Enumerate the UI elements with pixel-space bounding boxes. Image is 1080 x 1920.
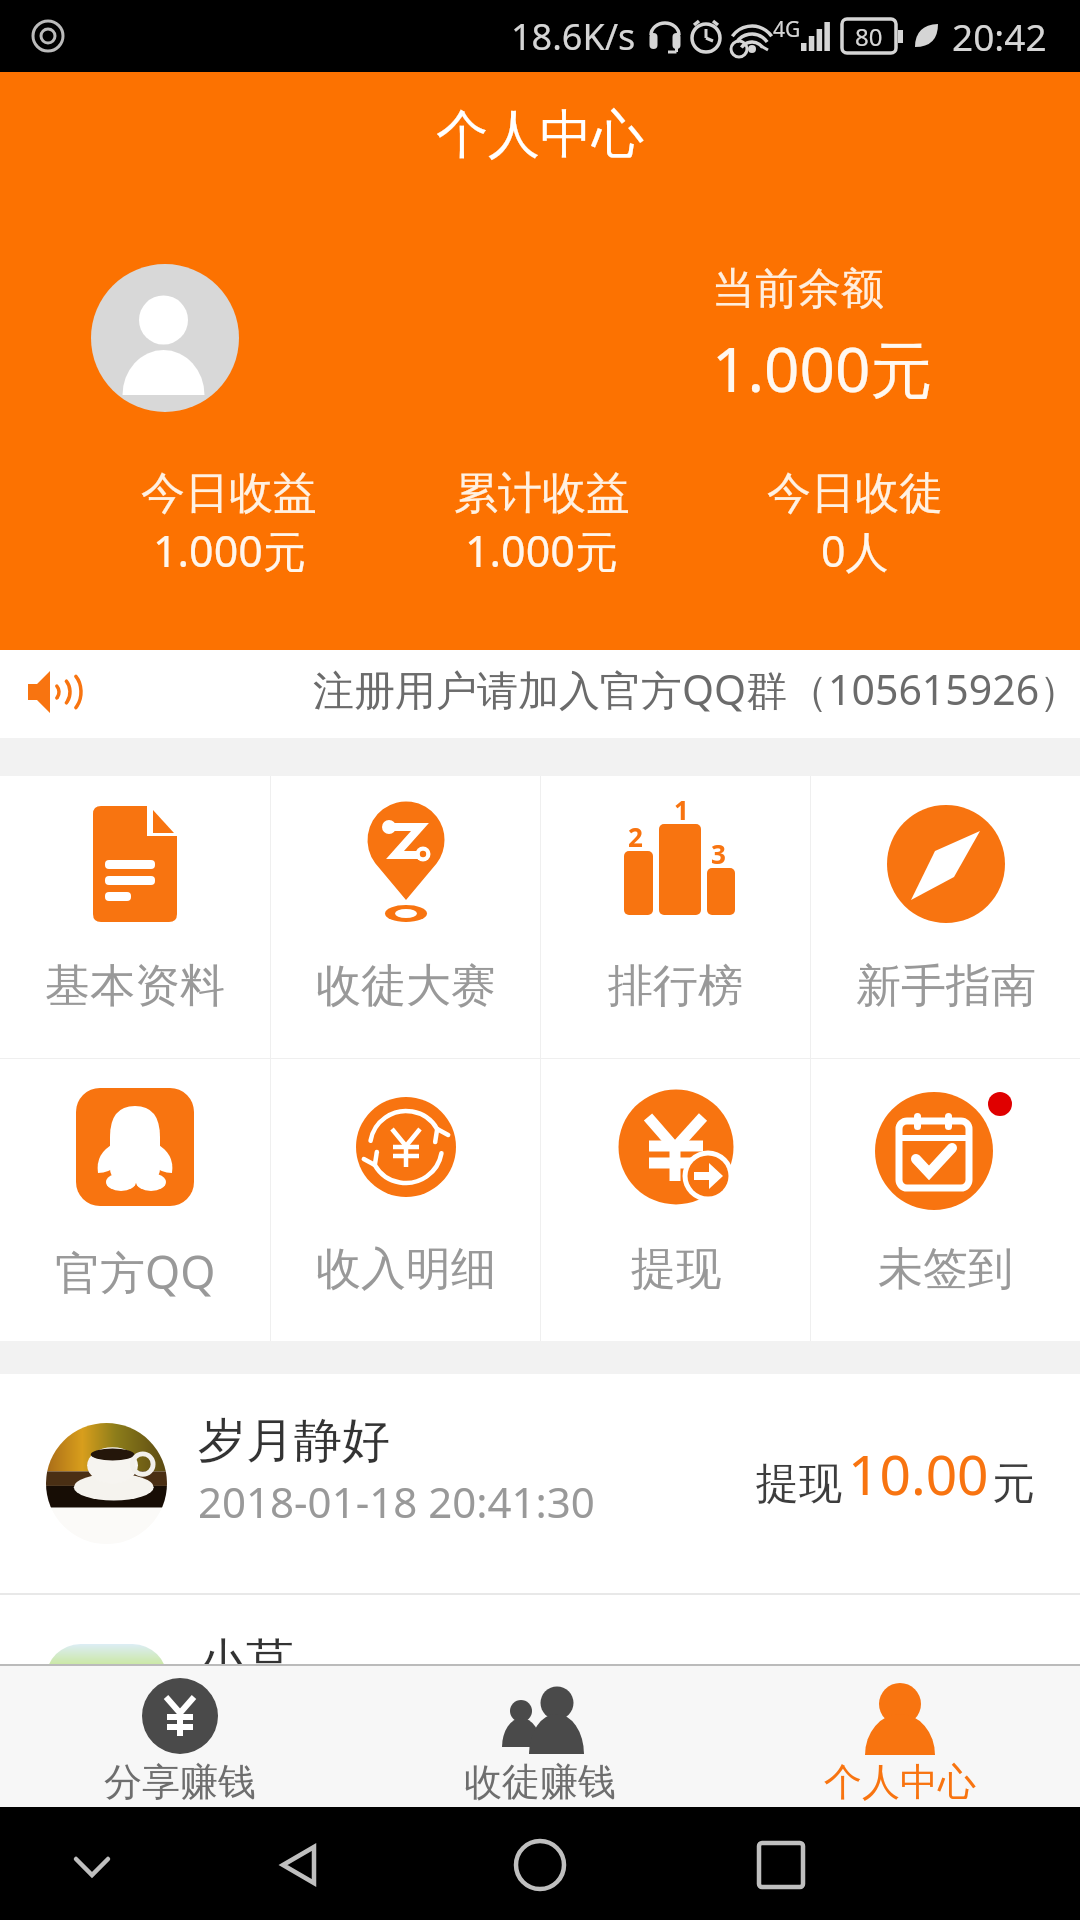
staticText: 10.00 bbox=[848, 1436, 989, 1511]
staticText: 1.000元 bbox=[153, 521, 306, 580]
button[interactable]: 未签到 bbox=[811, 1059, 1080, 1341]
staticText: 个人中心 bbox=[436, 102, 644, 168]
staticText: 1.000元 bbox=[465, 521, 618, 580]
button[interactable]: Hide keyboard bbox=[52, 1825, 132, 1905]
staticText: 4G bbox=[773, 15, 801, 44]
button[interactable]: Announcement bbox=[0, 650, 1080, 738]
button[interactable]: 小莒 bbox=[0, 1595, 1080, 1664]
button[interactable]: 基本资料 bbox=[0, 776, 270, 1058]
button[interactable]: 个人中心 bbox=[720, 1666, 1080, 1807]
staticText: 分享赚钱 bbox=[104, 1758, 256, 1806]
staticText: 小莒 bbox=[198, 1632, 294, 1664]
button[interactable]: 岁月静好 bbox=[0, 1374, 1080, 1593]
button[interactable]: 提现 bbox=[541, 1059, 810, 1341]
staticText: 注册用户请加入官方QQ群（105615926）， bbox=[313, 661, 1080, 717]
button[interactable]: Recents bbox=[741, 1825, 821, 1905]
staticText: 收徒大赛 bbox=[316, 958, 496, 1015]
staticText: 排行榜 bbox=[608, 958, 743, 1015]
staticText: 元 bbox=[992, 1457, 1035, 1511]
button[interactable]: 累计收益 bbox=[385, 466, 698, 580]
staticText: 新手指南 bbox=[856, 958, 1036, 1015]
staticText: 收入明细 bbox=[316, 1241, 496, 1298]
staticText: 18.6K/s bbox=[511, 12, 636, 61]
staticText: 收徒赚钱 bbox=[464, 1758, 616, 1806]
staticText: 基本资料 bbox=[45, 958, 225, 1015]
staticText: 个人中心 bbox=[824, 1758, 976, 1806]
button[interactable]: Profile avatar bbox=[91, 264, 239, 412]
staticText: 2018-01-18 20:41:30 bbox=[198, 1473, 595, 1530]
staticText: 提现 bbox=[756, 1457, 842, 1511]
staticText: 0人 bbox=[821, 521, 889, 580]
staticText: 80 bbox=[855, 20, 883, 53]
staticText: 官方QQ bbox=[55, 1241, 216, 1302]
button[interactable]: Back bbox=[260, 1825, 340, 1905]
staticText: 岁月静好 bbox=[198, 1411, 390, 1471]
button[interactable]: 分享赚钱 bbox=[0, 1666, 360, 1807]
staticText: 1 bbox=[674, 792, 689, 827]
staticText: 20:42 bbox=[952, 11, 1047, 61]
button[interactable]: 收徒大赛 bbox=[271, 776, 540, 1058]
staticText: 1.000元 bbox=[712, 326, 933, 411]
staticText: 当前余额 bbox=[712, 262, 884, 316]
staticText: 提现 bbox=[631, 1241, 721, 1298]
button[interactable]: 收徒赚钱 bbox=[360, 1666, 720, 1807]
staticText: 今日收益 bbox=[141, 466, 317, 521]
button[interactable]: 今日收徒 bbox=[698, 466, 1011, 580]
button[interactable]: 收入明细 bbox=[271, 1059, 540, 1341]
staticText: 累计收益 bbox=[454, 466, 630, 521]
button[interactable]: 2 bbox=[541, 776, 810, 1058]
staticText: 未签到 bbox=[878, 1241, 1013, 1298]
button[interactable]: 新手指南 bbox=[811, 776, 1080, 1058]
staticText: 2 bbox=[628, 819, 643, 854]
staticText: 3 bbox=[711, 836, 726, 871]
button[interactable]: 今日收益 bbox=[73, 466, 385, 580]
other: Announcement bbox=[26, 668, 76, 718]
button[interactable]: 官方QQ bbox=[0, 1059, 270, 1341]
button[interactable]: Home bbox=[500, 1825, 580, 1905]
staticText: 今日收徒 bbox=[767, 466, 943, 521]
